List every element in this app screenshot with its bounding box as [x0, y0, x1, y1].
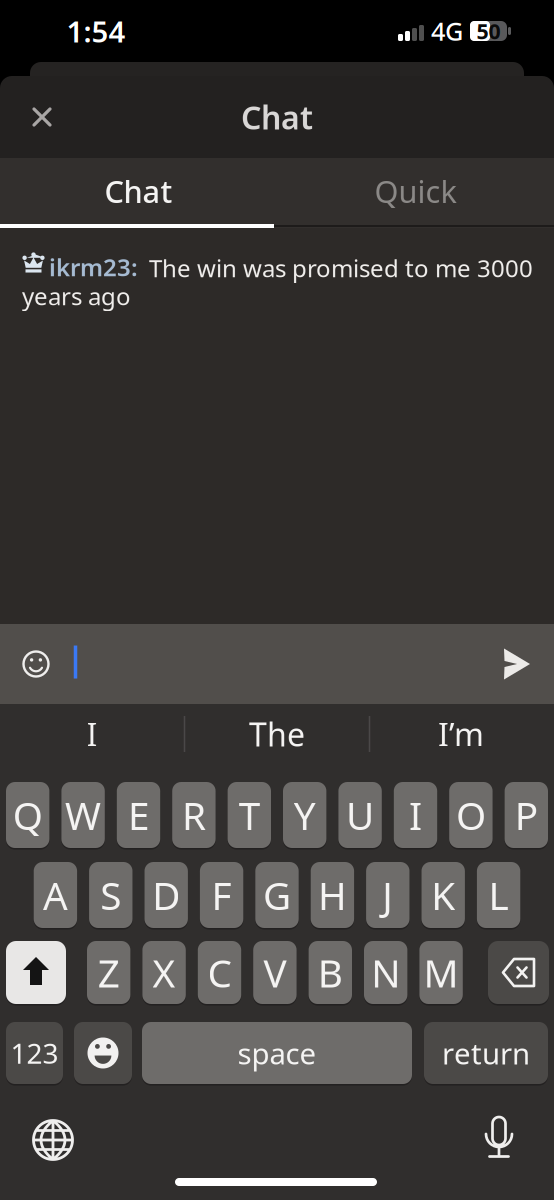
- staticText: Z: [98, 947, 120, 998]
- staticText: W: [65, 789, 101, 841]
- staticText: F: [212, 869, 232, 921]
- button[interactable]: Q: [6, 782, 49, 848]
- staticText: T: [239, 789, 260, 841]
- button[interactable]: Shift: [6, 941, 66, 1004]
- button[interactable]: T: [228, 782, 271, 848]
- staticText: Chat: [104, 171, 172, 211]
- button[interactable]: Z: [87, 941, 130, 1004]
- button[interactable]: I: [7, 708, 177, 760]
- staticText: space: [237, 1033, 316, 1072]
- button[interactable]: O: [449, 782, 493, 848]
- staticText: S: [100, 869, 121, 921]
- button[interactable]: S: [89, 862, 132, 928]
- button[interactable]: Quick: [277, 158, 554, 224]
- staticText: P: [515, 789, 538, 841]
- button[interactable]: K: [421, 862, 465, 928]
- staticText: Y: [294, 789, 316, 841]
- button[interactable]: Close: [0, 76, 84, 158]
- staticText: I: [409, 789, 422, 841]
- staticText: U: [346, 789, 374, 841]
- staticText: The: [249, 713, 305, 755]
- button[interactable]: G: [255, 862, 299, 928]
- staticText: N: [371, 947, 400, 998]
- button[interactable]: return: [424, 1022, 548, 1084]
- staticText: E: [128, 789, 149, 841]
- staticText: D: [152, 869, 180, 921]
- button[interactable]: I: [394, 782, 437, 848]
- staticText: X: [153, 947, 176, 998]
- button[interactable]: V: [253, 941, 297, 1004]
- staticText: Quick: [374, 171, 456, 211]
- button[interactable]: space: [142, 1022, 412, 1084]
- staticText: return: [442, 1033, 530, 1072]
- staticText: I’m: [438, 713, 484, 755]
- staticText: I: [86, 713, 97, 755]
- button[interactable]: Dictation: [474, 1112, 524, 1162]
- button[interactable]: P: [505, 782, 548, 848]
- button[interactable]: W: [61, 782, 105, 848]
- staticText: J: [382, 869, 393, 921]
- staticText: Q: [13, 789, 43, 841]
- button[interactable]: C: [198, 941, 241, 1004]
- button[interactable]: 123: [6, 1022, 63, 1084]
- staticText: L: [489, 869, 509, 921]
- staticText: Chat: [241, 96, 313, 138]
- button[interactable]: A: [34, 862, 77, 928]
- staticText: K: [431, 869, 455, 921]
- staticText: O: [456, 789, 486, 841]
- button[interactable]: E: [117, 782, 160, 848]
- staticText: 1:54: [66, 11, 125, 50]
- button[interactable]: Emoji keyboard: [74, 1022, 132, 1084]
- button[interactable]: L: [477, 862, 520, 928]
- staticText: R: [182, 789, 206, 841]
- staticText: B: [318, 947, 343, 998]
- staticText: M: [424, 947, 459, 998]
- button[interactable]: D: [144, 862, 188, 928]
- staticText: A: [43, 869, 68, 921]
- staticText: 123: [10, 1034, 58, 1072]
- button[interactable]: M: [419, 941, 463, 1004]
- button[interactable]: N: [364, 941, 407, 1004]
- button[interactable]: R: [172, 782, 216, 848]
- button[interactable]: J: [366, 862, 409, 928]
- staticText: G: [263, 869, 291, 921]
- button[interactable]: Send: [495, 642, 539, 686]
- staticText: 50: [476, 17, 500, 45]
- button[interactable]: H: [311, 862, 354, 928]
- button[interactable]: Chat: [0, 158, 277, 224]
- button[interactable]: Y: [283, 782, 326, 848]
- staticText: C: [207, 947, 231, 998]
- button[interactable]: The: [192, 708, 362, 760]
- staticText: H: [318, 869, 347, 921]
- staticText: ikrm23:: [49, 251, 138, 283]
- button[interactable]: I’m: [376, 708, 546, 760]
- staticText: The win was promised to me 3000: [149, 252, 533, 284]
- button[interactable]: B: [309, 941, 352, 1004]
- button[interactable]: Delete: [488, 941, 549, 1004]
- button[interactable]: Emoji: [14, 642, 58, 686]
- button[interactable]: Next keyboard: [28, 1115, 78, 1165]
- button[interactable]: U: [338, 782, 382, 848]
- staticText: 4G: [431, 14, 463, 48]
- button[interactable]: X: [142, 941, 186, 1004]
- staticText: years ago: [22, 280, 131, 312]
- staticText: V: [263, 947, 286, 998]
- button[interactable]: F: [200, 862, 243, 928]
